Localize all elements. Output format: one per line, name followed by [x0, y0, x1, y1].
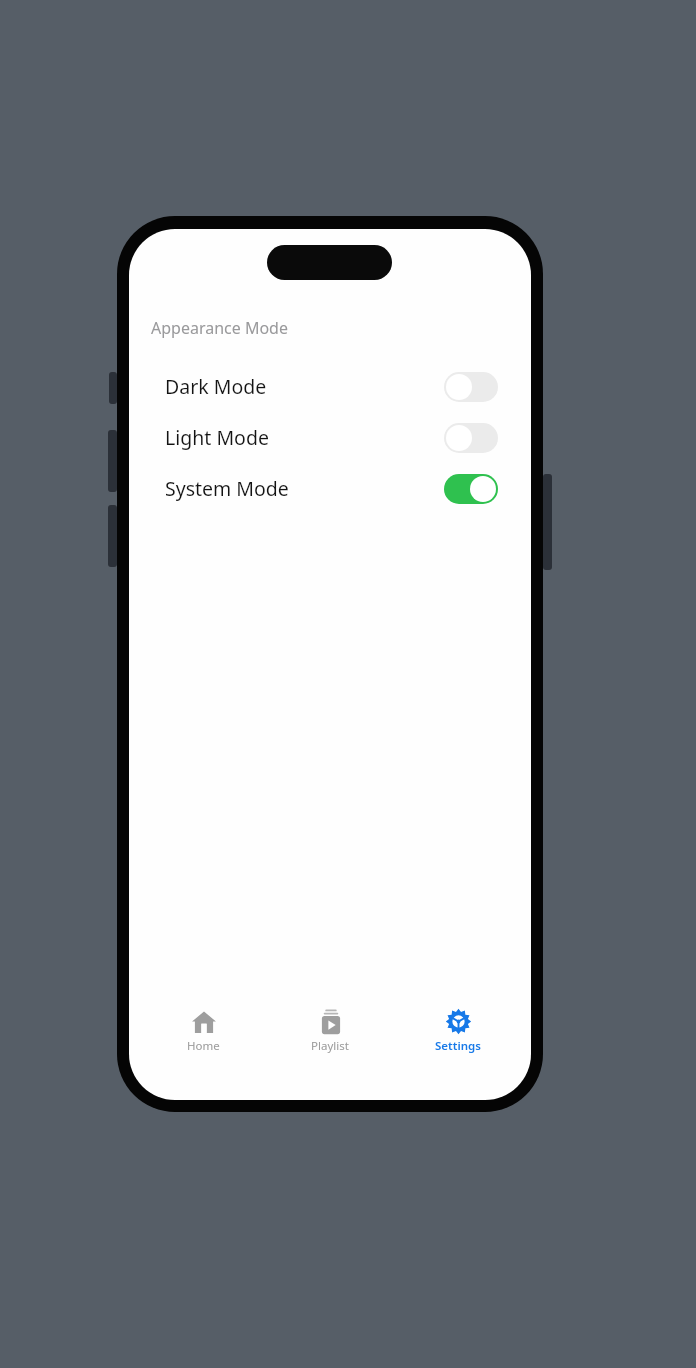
button[interactable]: On	[444, 474, 498, 504]
button[interactable]: Dark Mode	[129, 361, 531, 412]
button[interactable]: Off	[444, 372, 498, 402]
staticText: Appearance Mode	[151, 317, 288, 339]
staticText: Light Mode	[165, 424, 269, 451]
button[interactable]: Light Mode	[129, 412, 531, 463]
button[interactable]: Off	[444, 423, 498, 453]
button[interactable]: Playlist	[276, 1004, 384, 1058]
staticText: System Mode	[165, 475, 289, 502]
staticText: Home	[187, 1038, 220, 1054]
button[interactable]: Home	[149, 1004, 257, 1058]
staticText: Playlist	[311, 1038, 349, 1054]
staticText: Dark Mode	[165, 373, 267, 400]
button[interactable]: Settings	[404, 1004, 512, 1058]
staticText: Settings	[435, 1038, 481, 1054]
button[interactable]: System Mode	[129, 463, 531, 514]
